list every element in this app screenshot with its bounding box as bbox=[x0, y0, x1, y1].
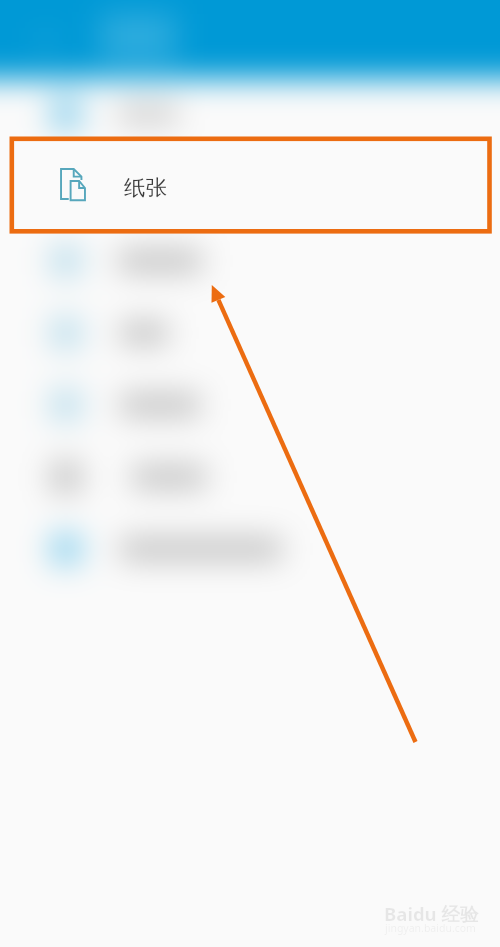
other: Paper bbox=[60, 168, 86, 201]
button[interactable] bbox=[0, 225, 500, 297]
staticText: 纸张 bbox=[124, 174, 167, 201]
button[interactable]: Paper bbox=[10, 137, 492, 234]
staticText: jingyan.baidu.com bbox=[385, 921, 476, 935]
staticText: Baidu 经验 bbox=[384, 901, 479, 926]
button[interactable] bbox=[0, 441, 500, 513]
button[interactable] bbox=[0, 513, 500, 585]
button[interactable] bbox=[0, 369, 500, 441]
button[interactable] bbox=[0, 297, 500, 369]
